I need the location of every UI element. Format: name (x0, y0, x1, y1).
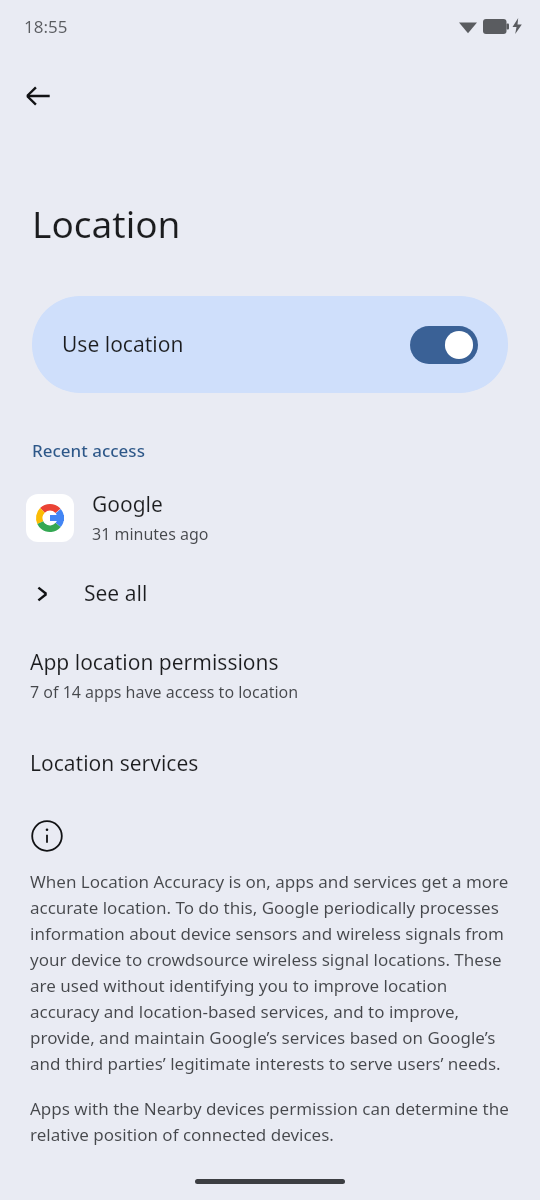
staticText: When Location Accuracy is on, apps and s… (30, 870, 516, 1075)
button[interactable]: App location permissions (0, 646, 540, 705)
staticText: 31 minutes ago (92, 523, 209, 545)
staticText: Google (92, 490, 163, 519)
button[interactable]: Use location (32, 296, 508, 393)
button[interactable]: Location services (0, 747, 540, 780)
staticText: 7 of 14 apps have access to location (30, 681, 299, 703)
button[interactable]: Google (0, 488, 540, 547)
staticText: Location (32, 198, 181, 248)
staticText: See all (84, 579, 148, 608)
button[interactable]: See all (0, 573, 540, 614)
staticText: Recent access (32, 439, 145, 462)
button[interactable]: Back (14, 72, 62, 120)
staticText: App location permissions (30, 648, 279, 677)
staticText: Use location (62, 330, 184, 359)
staticText: Apps with the Nearby devices permission … (30, 1097, 516, 1146)
staticText: 18:55 (24, 15, 68, 38)
